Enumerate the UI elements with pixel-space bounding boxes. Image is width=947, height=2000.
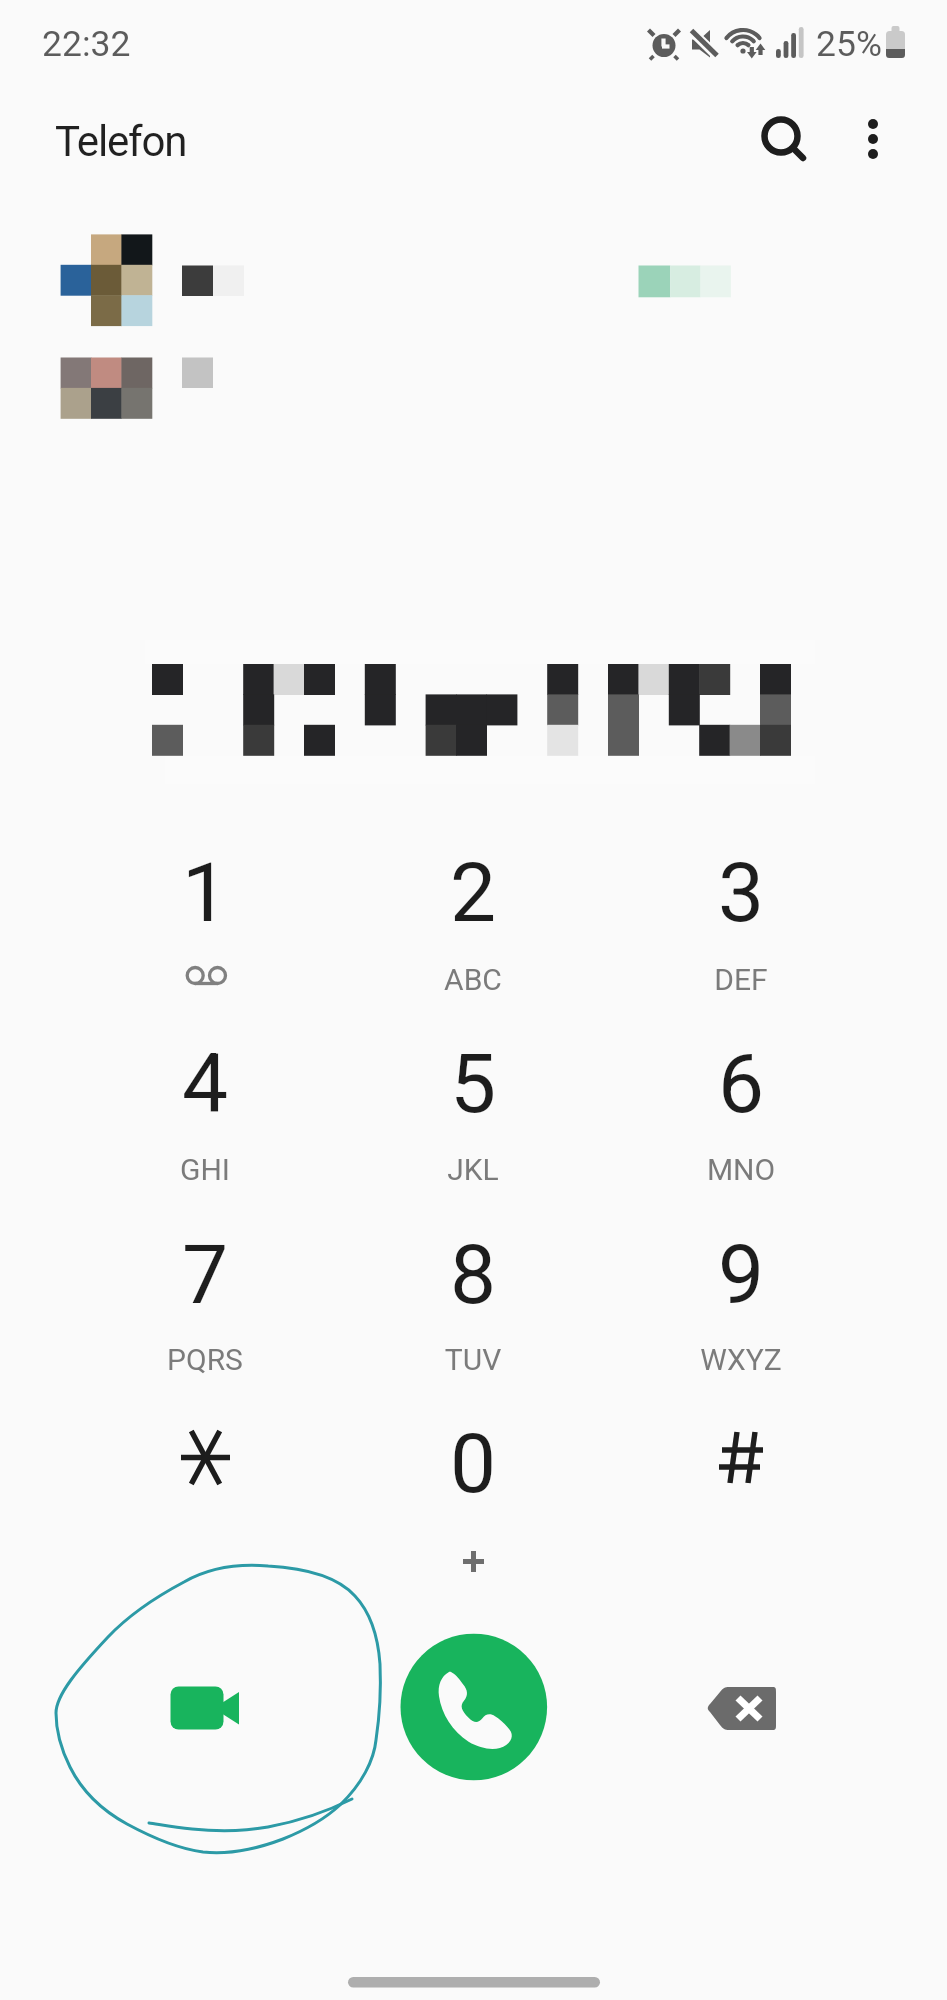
button[interactable] — [95, 1013, 315, 1188]
button[interactable] — [631, 1204, 851, 1379]
button[interactable]: Call — [401, 1635, 545, 1779]
button[interactable] — [363, 822, 583, 997]
button[interactable]: More options — [827, 90, 919, 182]
staticText: 5 — [363, 1036, 583, 1132]
staticText: 25% — [816, 23, 882, 65]
button[interactable] — [95, 1393, 315, 1568]
staticText: 4 — [95, 1036, 315, 1132]
button[interactable] — [95, 1204, 315, 1379]
button[interactable] — [363, 1204, 583, 1379]
staticText: TUV — [363, 1342, 583, 1377]
staticText: 2 — [363, 845, 583, 941]
staticText: DEF — [631, 962, 851, 997]
staticText: 8 — [363, 1227, 583, 1323]
staticText: 1 — [95, 845, 315, 941]
button[interactable] — [631, 1393, 851, 1568]
staticText: MNO — [631, 1152, 851, 1187]
staticText: PQRS — [95, 1342, 315, 1377]
staticText: JKL — [363, 1152, 583, 1187]
button[interactable] — [363, 1393, 583, 1568]
button[interactable] — [631, 1013, 851, 1188]
staticText: 22:32 — [42, 23, 131, 65]
staticText: 3 — [631, 845, 851, 941]
button[interactable] — [95, 822, 315, 997]
button[interactable]: Search — [735, 90, 827, 182]
staticText: 7 — [95, 1227, 315, 1323]
button[interactable]: Backspace — [680, 1650, 805, 1775]
button[interactable] — [631, 822, 851, 997]
staticText: 9 — [631, 1227, 851, 1323]
button[interactable] — [363, 1013, 583, 1188]
staticText: 0 — [363, 1416, 583, 1512]
staticText: 6 — [631, 1036, 851, 1132]
button[interactable]: Video call — [140, 1640, 270, 1770]
staticText: Telefon — [55, 117, 187, 166]
staticText: WXYZ — [631, 1342, 851, 1377]
staticText: ABC — [363, 962, 583, 997]
staticText: GHI — [95, 1152, 315, 1187]
